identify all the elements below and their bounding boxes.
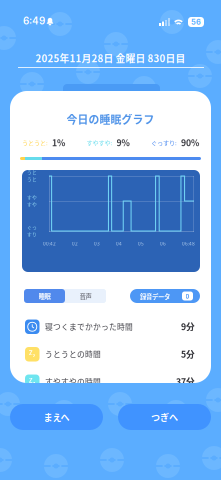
staticText: ぐっすり	[27, 223, 37, 237]
staticText: 00:42	[43, 240, 56, 247]
staticText: z	[33, 380, 36, 386]
staticText: 90%	[181, 136, 199, 149]
button[interactable]: 録音データ	[130, 289, 200, 303]
button[interactable]: 睡眠	[24, 289, 65, 303]
staticText: 56	[191, 17, 201, 26]
staticText: 37分	[176, 375, 195, 388]
staticText: つぎへ	[151, 410, 178, 423]
staticText: Z	[29, 377, 33, 384]
staticText: 05	[138, 240, 144, 247]
staticText: ぐっすり:	[151, 138, 177, 147]
button[interactable]: つぎへ	[118, 404, 211, 430]
staticText: 02	[72, 240, 78, 247]
staticText: まえへ	[43, 410, 69, 423]
staticText: すやすやの時間	[45, 376, 101, 387]
button[interactable]: 寝つくまでかかった時間	[10, 311, 211, 339]
button[interactable]: 音声	[65, 289, 106, 303]
staticText: 寝つくまでかかった時間	[45, 321, 133, 332]
staticText: 5分	[181, 348, 195, 360]
staticText: 06:48	[182, 240, 195, 247]
staticText: うとうとの時間	[45, 348, 101, 360]
staticText: 2025年11月28日 金曜日 830日目	[35, 51, 185, 65]
button[interactable]: まえへ	[10, 404, 103, 430]
staticText: 音声	[79, 291, 91, 301]
staticText: 6:49	[23, 15, 45, 27]
staticText: 録音データ	[140, 292, 170, 301]
button[interactable]: Z	[10, 339, 211, 366]
staticText: 06	[160, 240, 166, 247]
staticText: z	[33, 353, 36, 358]
staticText: 04	[116, 240, 122, 247]
staticText: うとうと	[27, 168, 37, 182]
staticText: すやすや:	[86, 138, 112, 147]
staticText: 03	[94, 240, 100, 247]
staticText: Z	[29, 349, 33, 357]
staticText: うとうと:	[22, 138, 48, 147]
button[interactable]: Z	[10, 366, 211, 394]
staticText: 今日の睡眠グラフ	[66, 111, 154, 127]
staticText: すやすや	[27, 193, 37, 207]
staticText: 9分	[181, 320, 195, 333]
staticText: 0	[185, 291, 189, 301]
staticText: 睡眠	[38, 291, 50, 301]
staticText: 1%	[52, 136, 65, 149]
staticText: 9%	[116, 136, 129, 149]
